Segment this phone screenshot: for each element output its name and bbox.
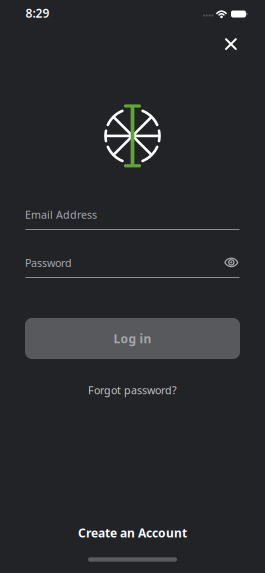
- button[interactable]: Create an Account: [78, 525, 187, 541]
- staticText: Forgot password?: [88, 383, 177, 397]
- button[interactable]: Forgot password?: [88, 383, 177, 397]
- staticText: Email Address: [25, 207, 97, 222]
- staticText: Create an Account: [78, 525, 187, 541]
- button[interactable]: Log in: [25, 318, 240, 359]
- button[interactable]: Show password: [0, 0, 265, 573]
- staticText: Password: [25, 256, 72, 270]
- staticText: 8:29: [25, 5, 49, 21]
- button[interactable]: Close: [216, 29, 246, 59]
- staticText: Log in: [113, 330, 151, 346]
